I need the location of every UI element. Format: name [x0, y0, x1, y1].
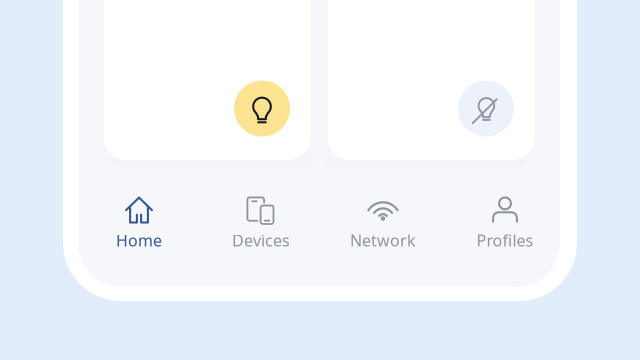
button[interactable]: Devices [200, 190, 322, 252]
staticText: Profiles [476, 230, 533, 251]
staticText: Devices [232, 230, 290, 251]
staticText: Home [116, 230, 162, 251]
button[interactable]: Home [78, 190, 200, 252]
button[interactable]: Bedroom lamp, off [328, 0, 534, 160]
button[interactable]: Living room lamp, on [104, 0, 310, 160]
button[interactable]: Profiles [444, 190, 566, 252]
staticText: Network [350, 230, 416, 251]
button[interactable]: Network [322, 190, 444, 252]
